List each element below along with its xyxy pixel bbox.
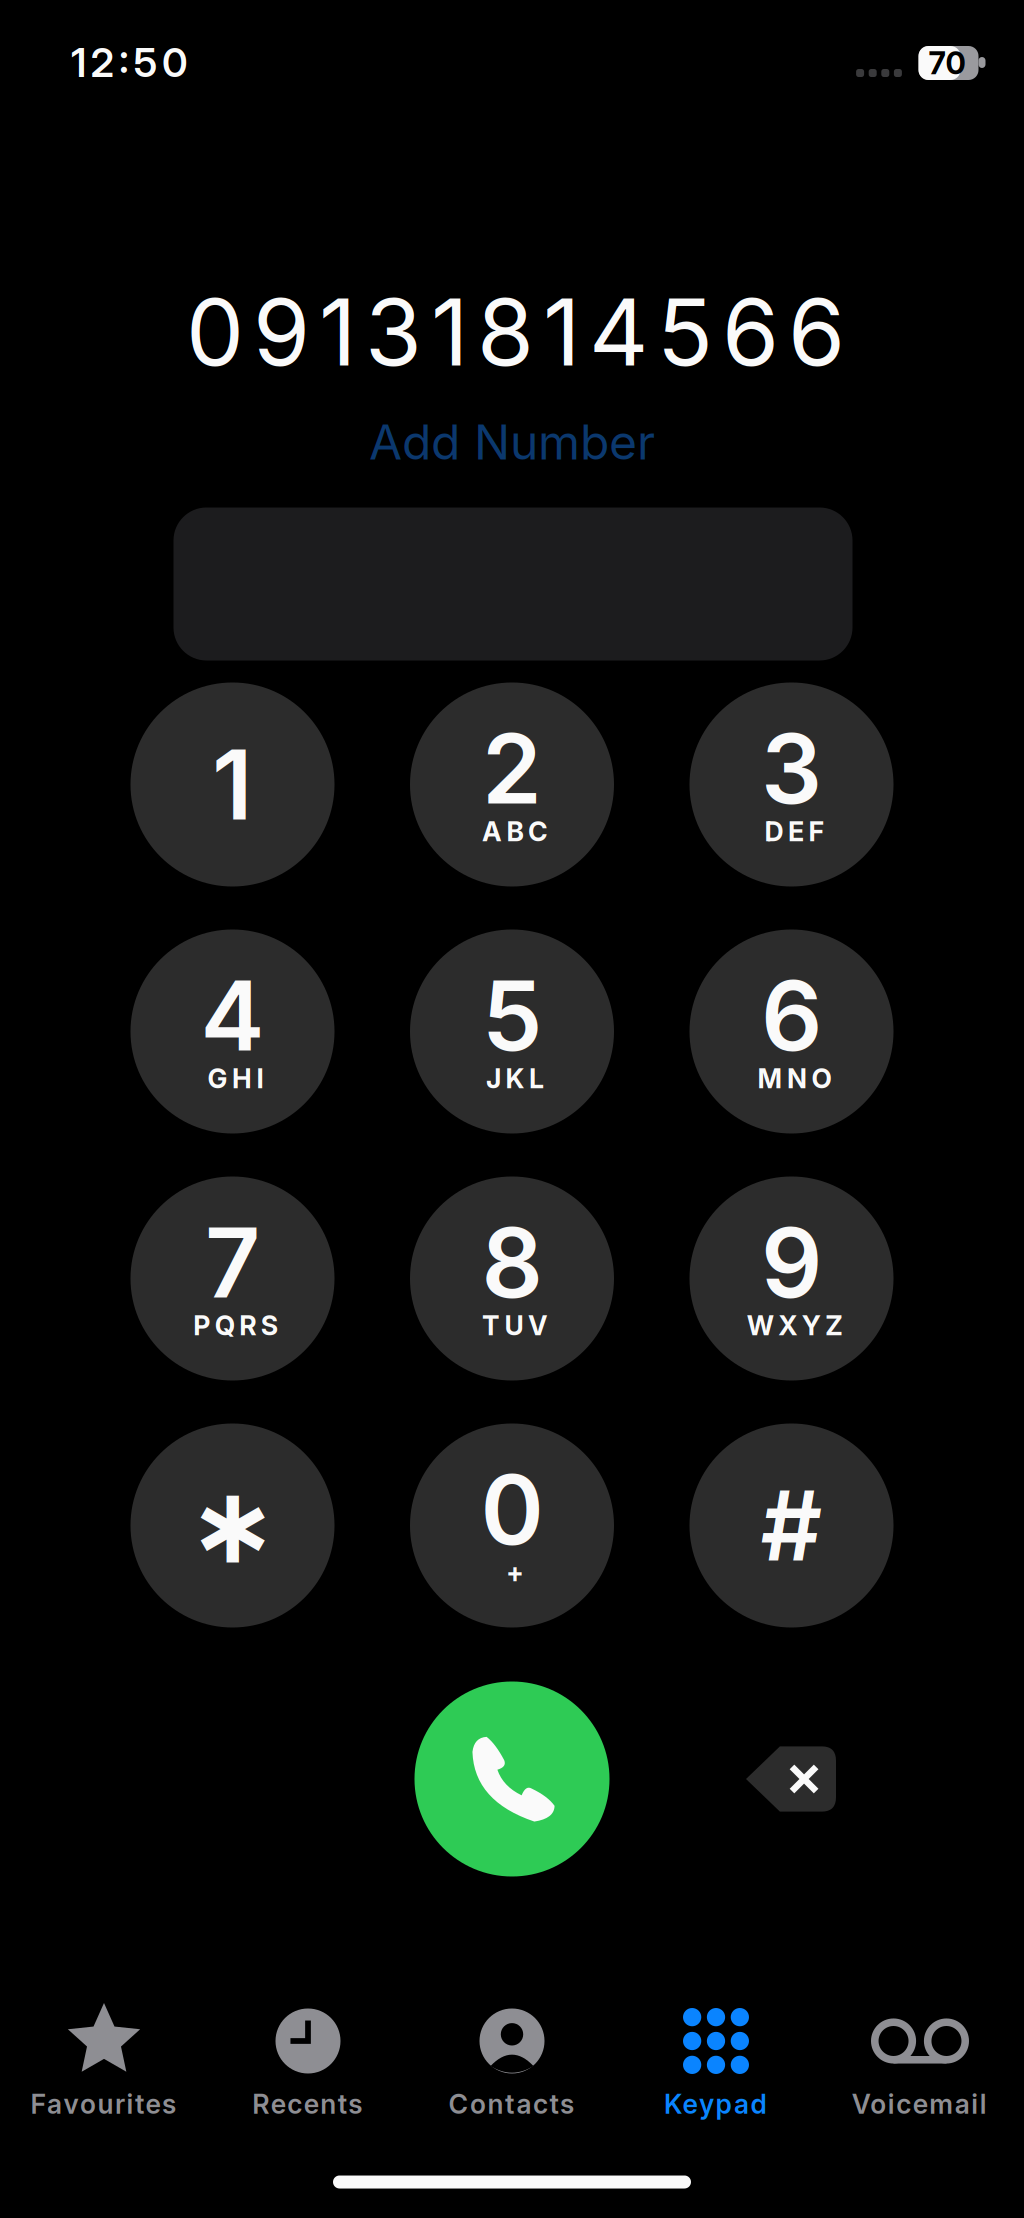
staticText: MNO <box>757 1063 831 1094</box>
button[interactable]: ∗ <box>130 1423 334 1627</box>
staticText: 12:50 <box>71 39 188 86</box>
button[interactable]: 9 <box>689 1176 893 1380</box>
staticText: PQRS <box>193 1310 278 1341</box>
staticText: 8 <box>481 1206 542 1319</box>
button[interactable]: 8 <box>410 1176 614 1380</box>
staticText: 2 <box>482 712 542 825</box>
staticText: 7 <box>205 1206 260 1319</box>
button[interactable]: Favourites <box>2 2002 206 2122</box>
staticText: ABC <box>482 816 548 847</box>
staticText: WXYZ <box>747 1310 842 1341</box>
button[interactable]: 0 <box>410 1423 614 1627</box>
staticText: TUV <box>482 1310 548 1341</box>
button[interactable]: 7 <box>130 1176 334 1380</box>
staticText: 4 <box>200 959 264 1072</box>
button[interactable]: Recents <box>206 2002 410 2122</box>
button[interactable]: 2 <box>410 682 614 886</box>
button[interactable]: 4 <box>130 929 334 1133</box>
staticText: 09131814566 <box>186 278 845 386</box>
button[interactable]: Call <box>414 1681 609 1876</box>
staticText: Recents <box>252 2088 362 2120</box>
staticText: 70 <box>928 45 965 81</box>
button[interactable]: Add Number <box>302 402 722 482</box>
button[interactable]: Keypad <box>614 2002 818 2122</box>
staticText: Add Number <box>369 414 655 470</box>
button[interactable]: Voicemail <box>818 2002 1022 2122</box>
button[interactable]: Delete <box>716 1704 866 1854</box>
staticText: GHI <box>207 1063 263 1094</box>
staticText: 3 <box>761 712 822 825</box>
staticText: 9 <box>761 1206 822 1319</box>
button[interactable]: 3 <box>689 682 893 886</box>
staticText: JKL <box>486 1063 544 1094</box>
staticText: Contacts <box>448 2088 574 2120</box>
staticText: + <box>506 1557 524 1588</box>
staticText: 0 <box>480 1453 543 1566</box>
button[interactable]: 6 <box>689 929 893 1133</box>
staticText: # <box>760 1469 822 1582</box>
staticText: Keypad <box>664 2088 766 2120</box>
staticText: Voicemail <box>852 2088 987 2120</box>
staticText: Favourites <box>30 2088 176 2120</box>
button[interactable]: # <box>689 1423 893 1627</box>
staticText: 5 <box>482 959 542 1072</box>
button[interactable]: Contacts <box>410 2002 614 2122</box>
staticText: 6 <box>761 959 822 1072</box>
staticText: DEF <box>764 816 824 847</box>
staticText: 1 <box>212 728 253 841</box>
button[interactable]: 1 <box>130 682 334 886</box>
staticText: ∗ <box>188 1465 277 1586</box>
button[interactable]: 5 <box>410 929 614 1133</box>
